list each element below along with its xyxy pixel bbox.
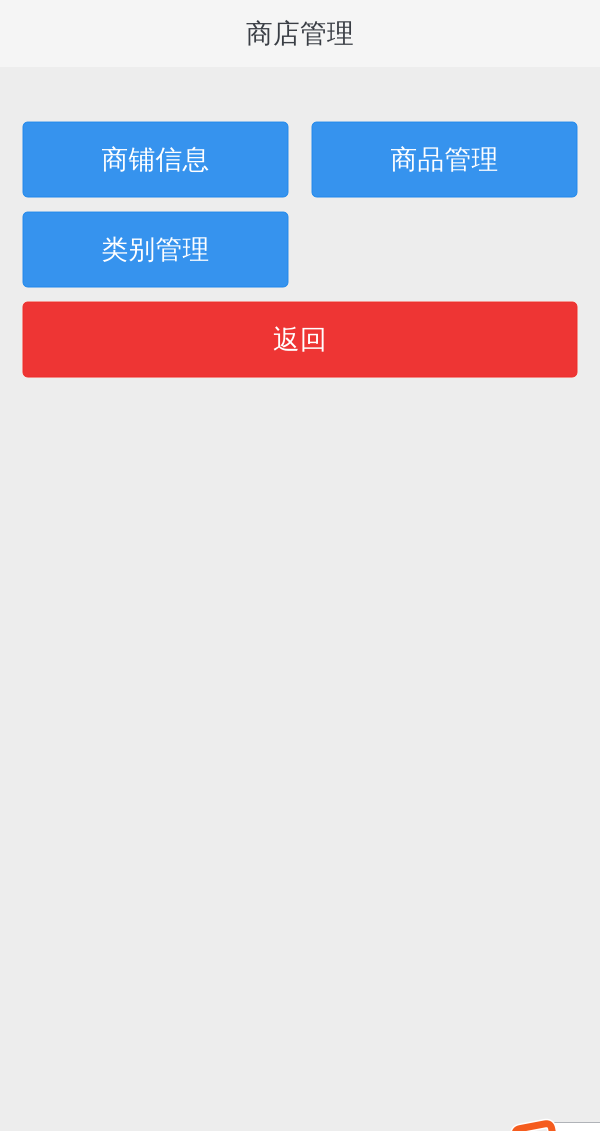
button[interactable]: 返回 bbox=[22, 301, 578, 378]
staticText: 商铺信息 bbox=[101, 143, 209, 176]
staticText: 类别管理 bbox=[101, 233, 209, 266]
staticText: 商店管理 bbox=[246, 17, 354, 50]
button[interactable]: 类别管理 bbox=[22, 211, 289, 288]
button[interactable]: 商铺信息 bbox=[22, 121, 289, 198]
button[interactable]: Customer service bbox=[505, 1110, 600, 1131]
button[interactable]: 商品管理 bbox=[311, 121, 578, 198]
staticText: 返回 bbox=[273, 323, 327, 356]
staticText: 商品管理 bbox=[390, 143, 498, 176]
